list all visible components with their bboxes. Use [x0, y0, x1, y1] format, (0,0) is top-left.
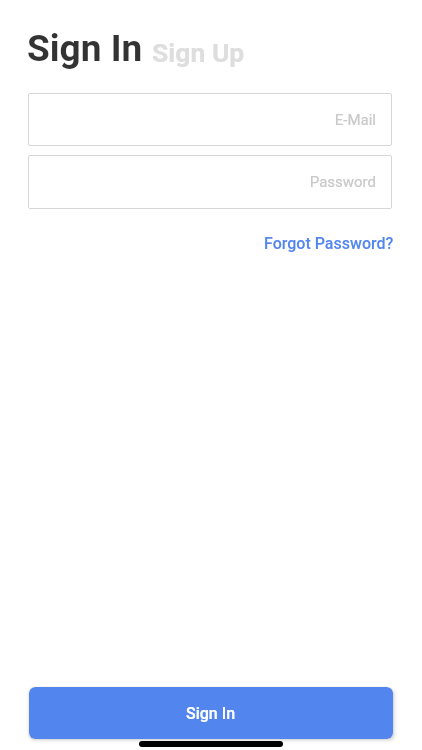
button[interactable]: Sign In: [29, 687, 393, 739]
button[interactable]: Sign In: [27, 27, 143, 70]
staticText: Password: [309, 173, 376, 191]
button[interactable]: Password: [28, 155, 392, 209]
button[interactable]: Forgot Password?: [264, 234, 394, 253]
staticText: E-Mail: [334, 111, 376, 129]
staticText: Sign In: [186, 704, 236, 723]
button[interactable]: E-Mail: [28, 93, 392, 146]
button[interactable]: Sign Up: [152, 37, 245, 68]
